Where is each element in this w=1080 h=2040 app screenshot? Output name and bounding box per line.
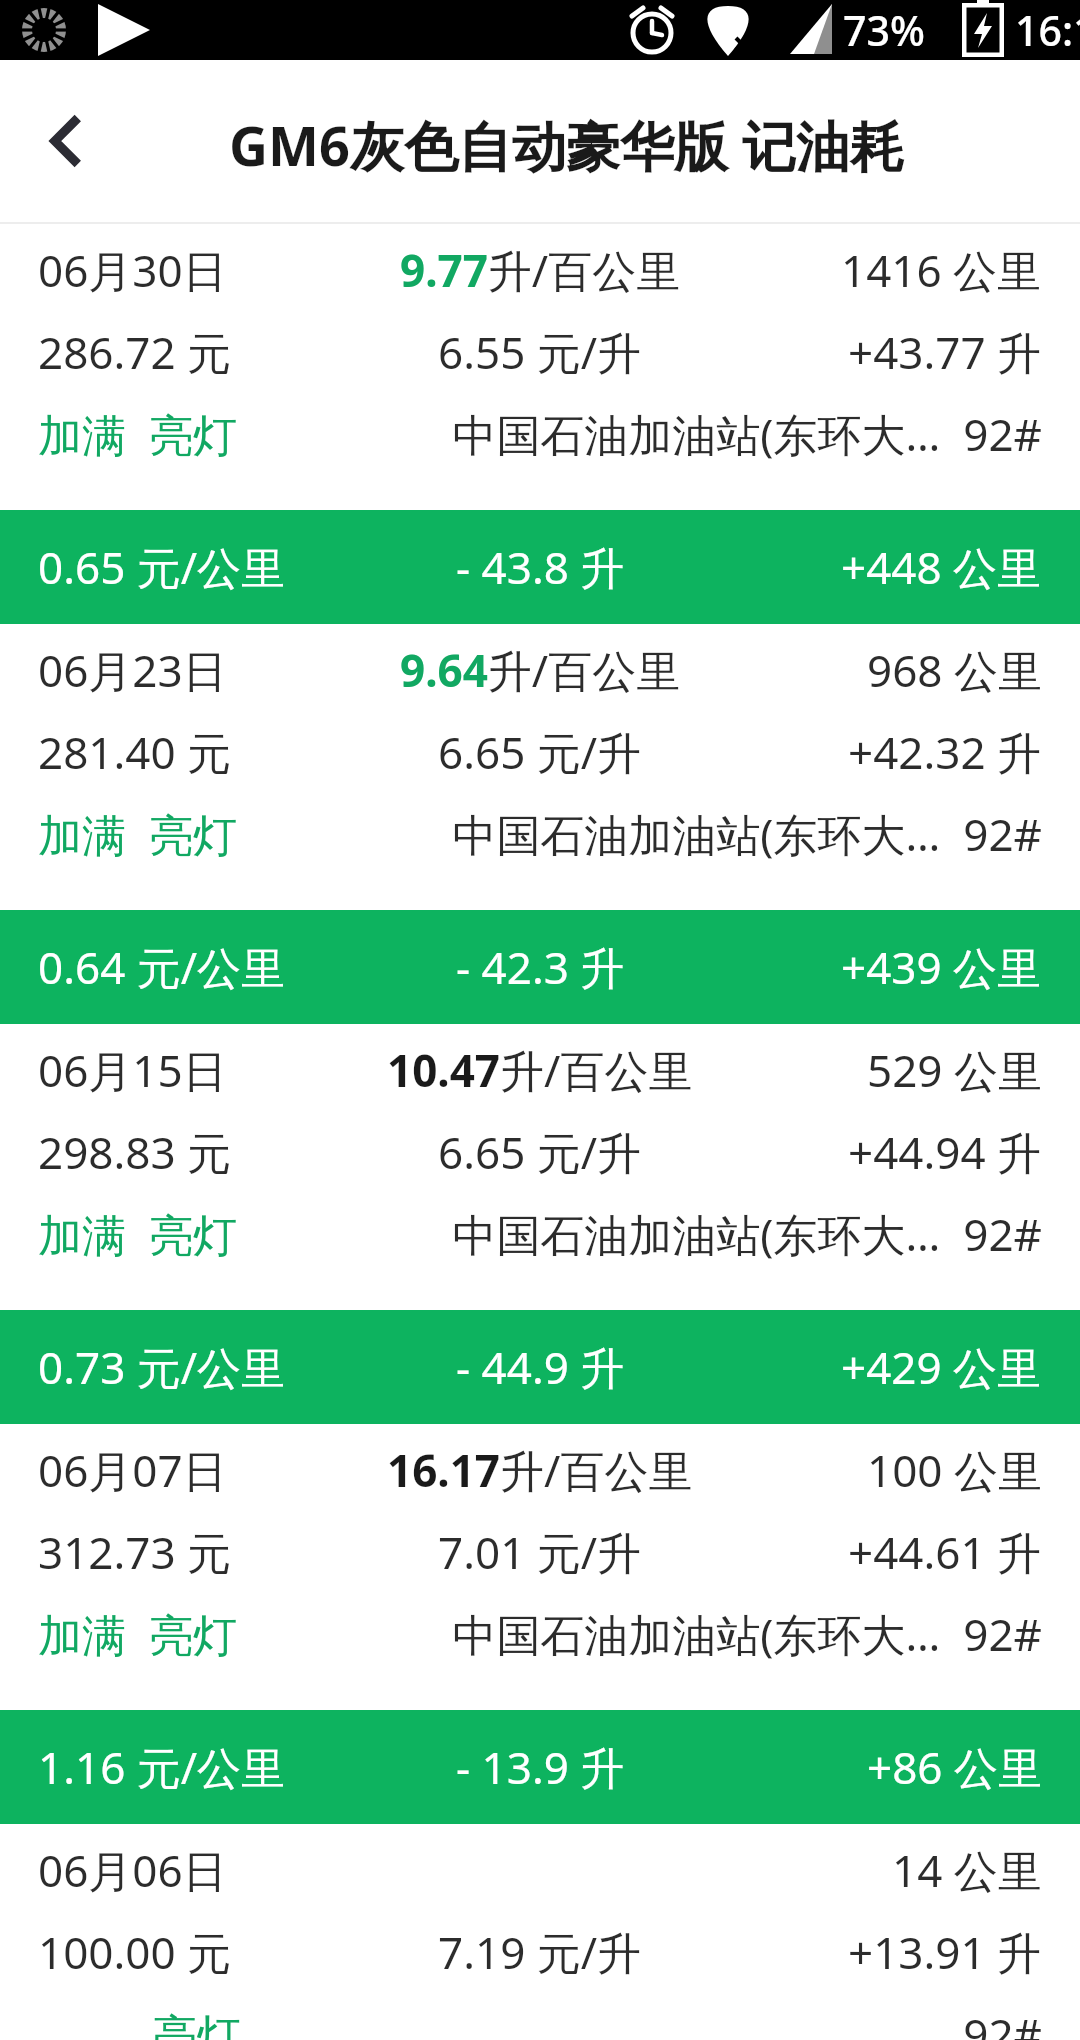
button[interactable]: 06月30日 <box>0 224 1080 510</box>
staticText: 16.17升/百公里 <box>387 1440 693 1500</box>
staticText: 10.47升/百公里 <box>387 1040 693 1100</box>
staticText: 6.65 元/升 <box>438 1122 642 1182</box>
staticText: 7.19 元/升 <box>438 1922 642 1982</box>
staticText: 9.77升/百公里 <box>400 240 681 300</box>
staticText: 中国石油加油站(东环大… 92# <box>452 1204 1042 1264</box>
staticText: 加满 亮灯 <box>38 1204 237 1264</box>
staticText: +44.94 升 <box>848 1122 1042 1182</box>
staticText: 312.73 元 <box>38 1522 232 1582</box>
staticText: 加满 亮灯 <box>38 404 237 464</box>
button[interactable]: 06月15日 <box>0 1024 1080 1310</box>
staticText: - 43.8 升 <box>456 537 625 597</box>
button[interactable]: 1.16 元/公里 <box>0 1710 1080 1824</box>
button[interactable]: 0.65 元/公里 <box>0 510 1080 624</box>
staticText: 0.73 元/公里 <box>38 1337 286 1397</box>
staticText: 1.16 元/公里 <box>38 1737 286 1797</box>
staticText: +448 公里 <box>841 537 1042 597</box>
button[interactable]: 06月23日 <box>0 624 1080 910</box>
staticText: 中国石油加油站(东环大… 92# <box>452 804 1042 864</box>
button[interactable]: 0.73 元/公里 <box>0 1310 1080 1424</box>
staticText: - 44.9 升 <box>456 1337 625 1397</box>
staticText: 7.01 元/升 <box>438 1522 642 1582</box>
staticText: +439 公里 <box>841 937 1042 997</box>
staticText: 中国石油加油站(东环大… 92# <box>452 404 1042 464</box>
staticText: 100 公里 <box>867 1440 1042 1500</box>
staticText: 加满 亮灯 <box>38 1604 237 1664</box>
staticText: 968 公里 <box>867 640 1042 700</box>
staticText: GM6灰色自动豪华版 记油耗 <box>229 108 904 182</box>
staticText: 14 公里 <box>892 1840 1042 1900</box>
button[interactable]: Back <box>0 60 130 222</box>
staticText: 06月06日 <box>38 1840 227 1900</box>
staticText: +44.61 升 <box>848 1522 1042 1582</box>
button[interactable]: 06月07日 <box>0 1424 1080 1710</box>
staticText: +43.77 升 <box>848 322 1042 382</box>
staticText: 加满 亮灯 <box>38 804 237 864</box>
staticText: 298.83 元 <box>38 1122 232 1182</box>
staticText: 6.65 元/升 <box>438 722 642 782</box>
staticText: 16:16 <box>1015 2 1080 58</box>
staticText: 92# <box>963 2004 1042 2040</box>
button[interactable]: 0.64 元/公里 <box>0 910 1080 1024</box>
staticText: +13.91 升 <box>848 1922 1042 1982</box>
staticText: 1416 公里 <box>841 240 1042 300</box>
staticText: - 13.9 升 <box>456 1737 625 1797</box>
staticText: 0.65 元/公里 <box>38 537 286 597</box>
staticText: 亮灯 <box>38 2004 241 2040</box>
staticText: +86 公里 <box>867 1737 1042 1797</box>
staticText: 286.72 元 <box>38 322 232 382</box>
staticText: 100.00 元 <box>38 1922 232 1982</box>
staticText: 9.64升/百公里 <box>400 640 681 700</box>
staticText: 06月23日 <box>38 640 227 700</box>
staticText: 06月30日 <box>38 240 227 300</box>
staticText: 中国石油加油站(东环大… 92# <box>452 1604 1042 1664</box>
button[interactable]: 06月06日 <box>0 1824 1080 2040</box>
staticText: +42.32 升 <box>848 722 1042 782</box>
staticText: +429 公里 <box>841 1337 1042 1397</box>
staticText: 06月15日 <box>38 1040 227 1100</box>
staticText: 6.55 元/升 <box>438 322 642 382</box>
staticText: 529 公里 <box>867 1040 1042 1100</box>
staticText: - 42.3 升 <box>456 937 625 997</box>
staticText: 73% <box>843 2 925 58</box>
staticText: 06月07日 <box>38 1440 227 1500</box>
staticText: 0.64 元/公里 <box>38 937 286 997</box>
staticText: 281.40 元 <box>38 722 232 782</box>
